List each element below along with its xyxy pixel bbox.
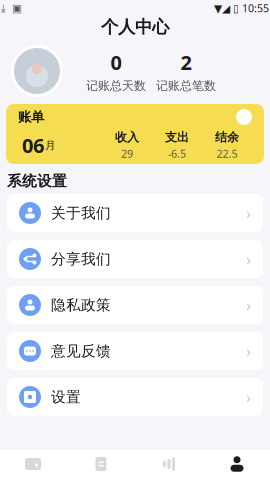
button[interactable]: 关于我们 [7,194,263,232]
button[interactable]: 账单 [71,450,131,478]
staticText: 设置 [51,388,81,406]
staticText: ⤓ ▣ [1,2,22,14]
staticText: 收入 [115,130,139,145]
staticText: -6.5 [168,147,186,161]
staticText: 个人中心 [101,16,169,38]
staticText: › [246,340,251,362]
staticText: 2 [180,49,191,75]
button[interactable]: 意见反馈 [7,332,263,370]
staticText: 06 [22,132,44,159]
staticText: 隐私政策 [51,296,111,314]
button[interactable]: 我的 [207,450,267,478]
staticText: 记账总天数 [86,78,146,93]
button[interactable]: 账单 [6,104,264,164]
staticText: 记账总笔数 [156,78,216,93]
staticText: 意见反馈 [51,342,111,360]
staticText: 0 [110,49,121,75]
button[interactable]: 钱包 [3,450,63,478]
staticText: › [246,294,251,316]
staticText: ▼◢ ▯ 10:55 [214,1,269,15]
staticText: › [246,248,251,270]
staticText: 关于我们 [51,204,111,222]
staticText: 22.5 [216,147,237,161]
staticText: 29 [121,147,133,161]
staticText: 月 [45,139,56,152]
staticText: 账单 [18,109,44,125]
button[interactable]: 统计 [139,450,199,478]
button[interactable]: 隐私政策 [7,286,263,324]
staticText: 支出 [165,130,189,145]
staticText: › [246,202,251,224]
staticText: › [242,108,246,126]
staticText: 分享我们 [51,250,111,268]
button[interactable]: 设置 [7,378,263,416]
staticText: 结余 [215,130,239,145]
staticText: 系统设置 [7,172,67,190]
button[interactable]: 分享我们 [7,240,263,278]
staticText: › [246,386,251,408]
